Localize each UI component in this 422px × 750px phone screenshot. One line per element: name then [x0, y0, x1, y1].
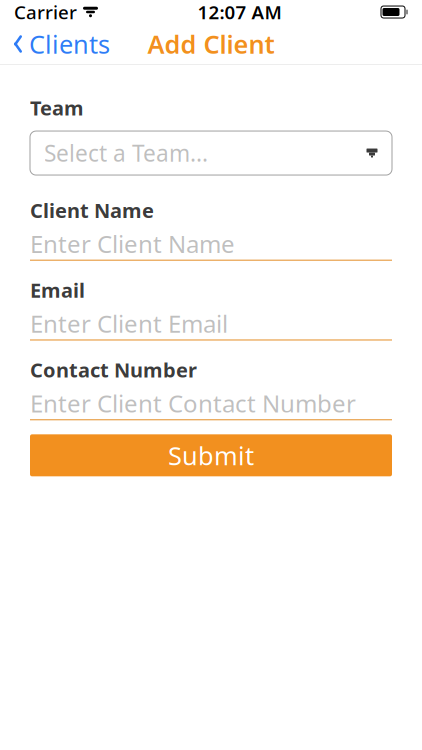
button[interactable]: Submit [30, 434, 392, 476]
staticText: Enter Client Contact Number [30, 387, 356, 419]
staticText: Carrier [14, 0, 77, 24]
staticText: Add Client [147, 27, 274, 61]
button[interactable]: Select a Team... [30, 131, 392, 175]
staticText: Enter Client Email [30, 307, 228, 339]
staticText: Submit [168, 438, 254, 472]
staticText: Enter Client Name [30, 228, 235, 260]
staticText: 12:07 AM [197, 0, 281, 24]
button[interactable]: Enter Client Name [30, 228, 392, 261]
staticText: Clients [29, 27, 110, 61]
staticText: Team [30, 94, 84, 121]
button[interactable]: Enter Client Email [30, 307, 392, 341]
staticText: Client Name [30, 197, 154, 224]
staticText: Select a Team... [44, 138, 208, 168]
button[interactable]: Enter Client Contact Number [30, 387, 392, 420]
staticText: Contact Number [30, 357, 197, 383]
button[interactable]: Clients [0, 19, 110, 69]
staticText: Email [30, 277, 85, 303]
